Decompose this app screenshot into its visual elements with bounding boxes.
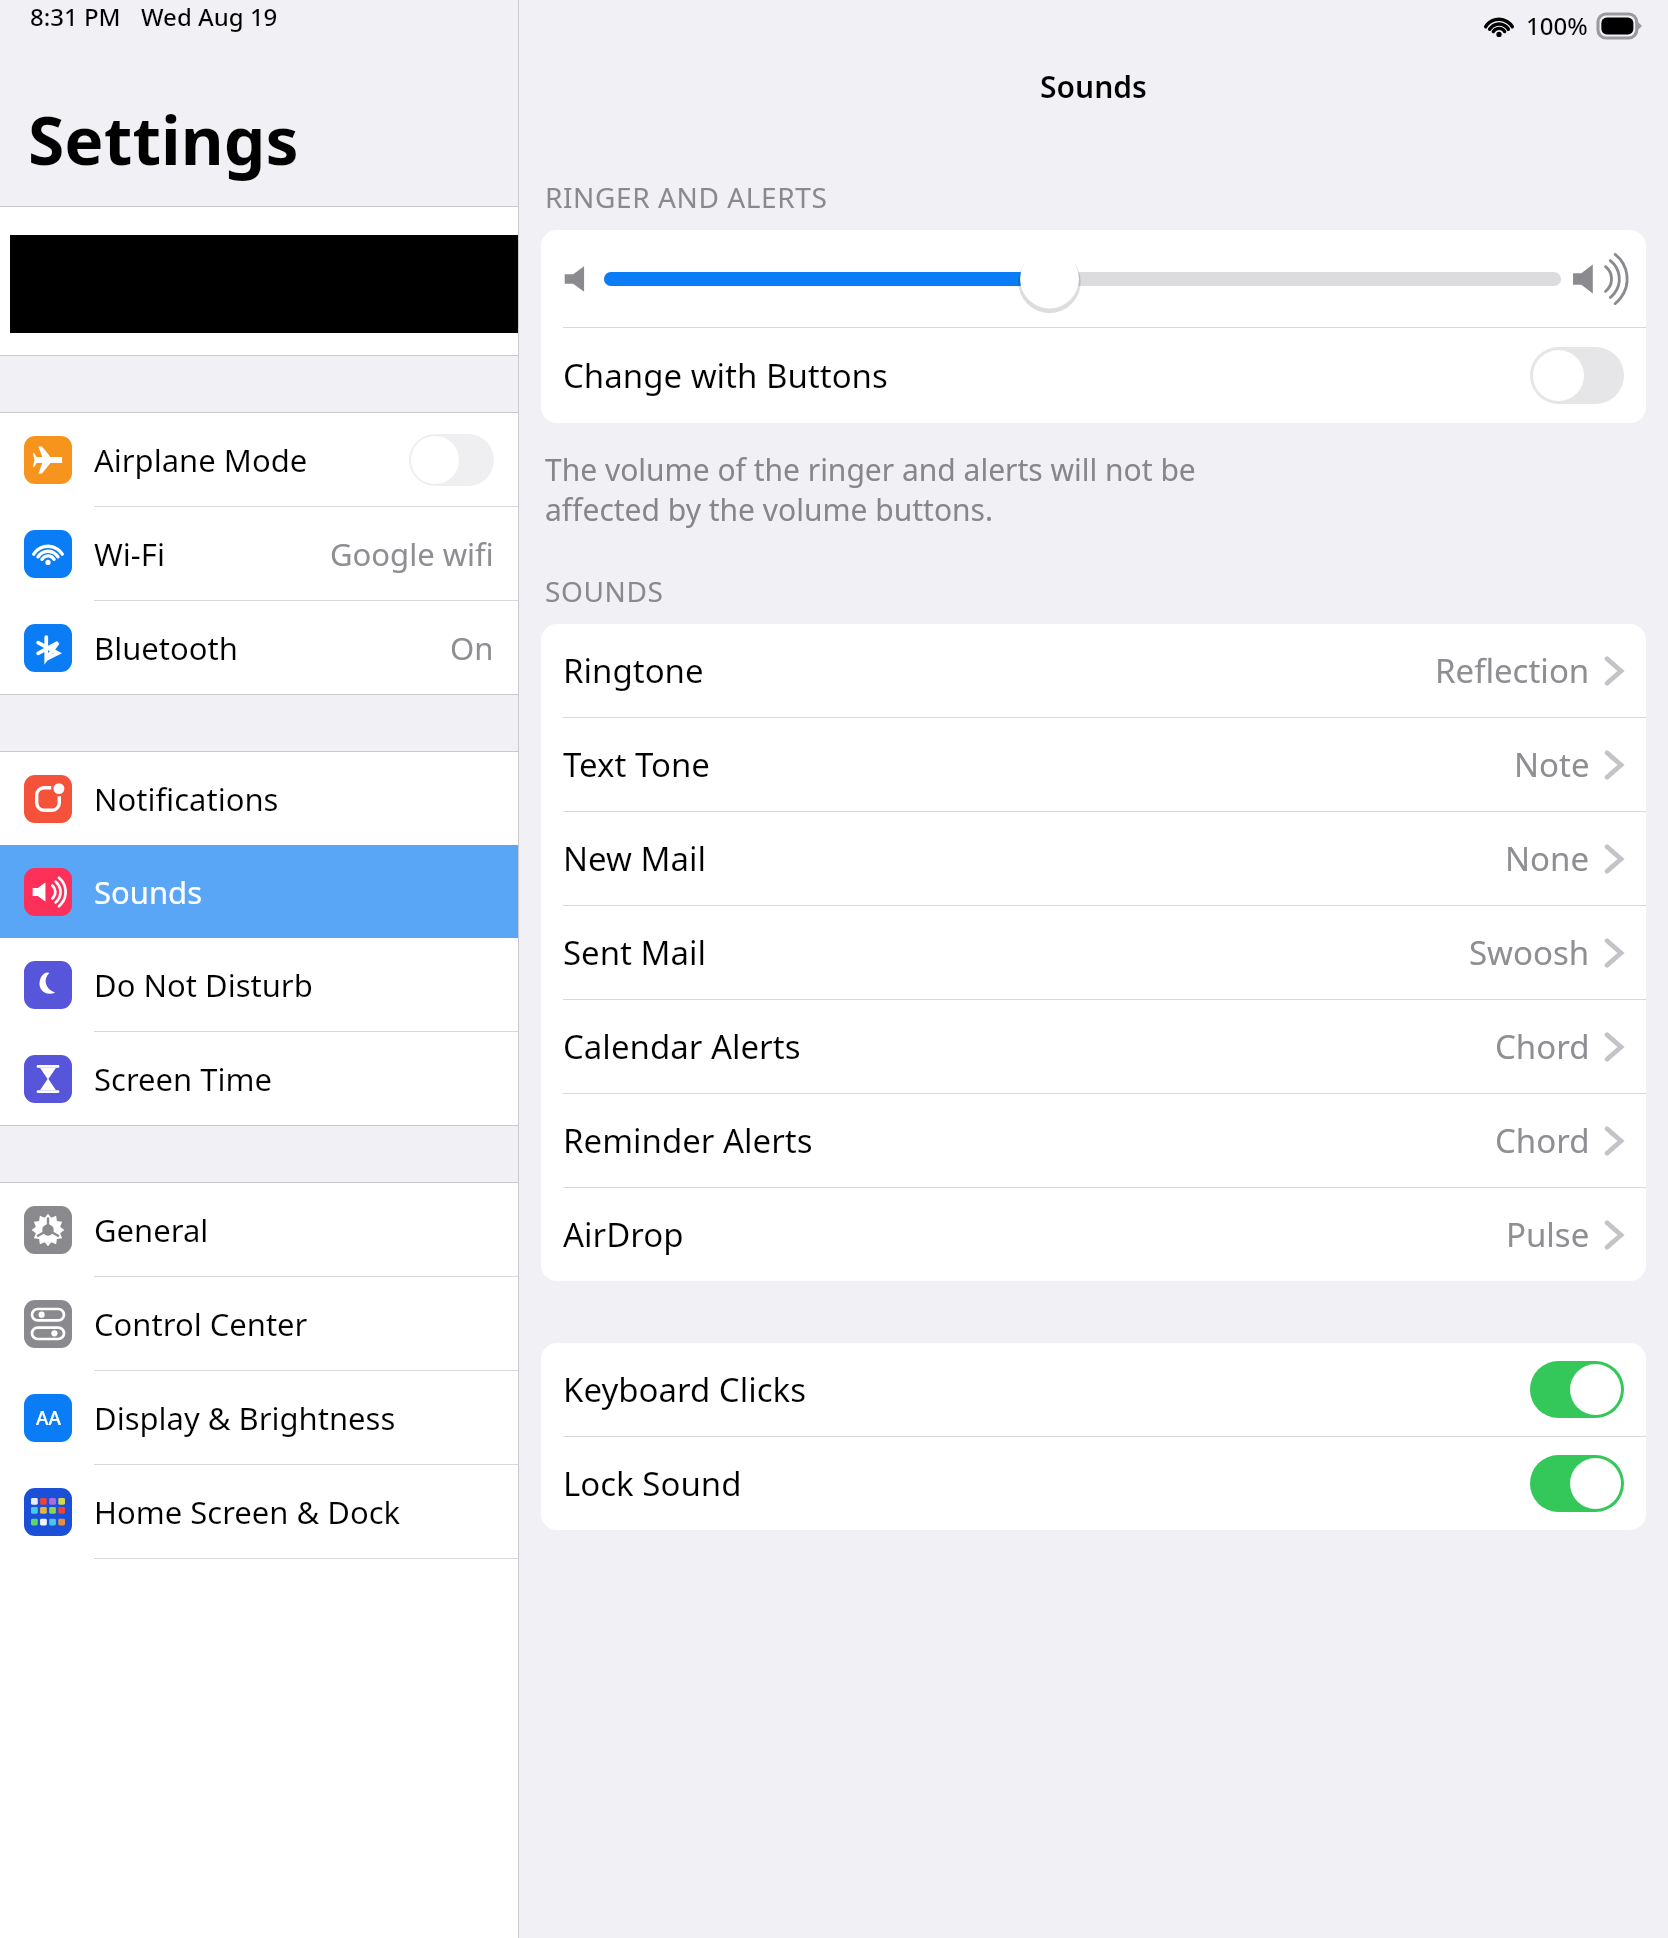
staticText: Bluetooth: [94, 627, 238, 669]
staticText: RINGER AND ALERTS: [545, 178, 828, 216]
button[interactable]: Screen Time: [0, 1032, 518, 1125]
staticText: On: [450, 627, 494, 669]
staticText: None: [1505, 836, 1590, 881]
staticText: Screen Time: [94, 1058, 272, 1100]
button[interactable]: New Mail: [541, 812, 1646, 905]
staticText: 8:31 PM: [30, 0, 121, 33]
button[interactable]: Sent Mail: [541, 906, 1646, 999]
button[interactable]: Airplane Mode: [0, 413, 518, 506]
staticText: Chord: [1495, 1118, 1590, 1163]
button[interactable]: Off: [1530, 347, 1624, 404]
staticText: Lock Sound: [563, 1461, 742, 1506]
staticText: The volume of the ringer and alerts will…: [545, 449, 1196, 530]
button[interactable]: Text Tone: [541, 718, 1646, 811]
staticText: Wed Aug 19: [141, 0, 278, 33]
staticText: Chord: [1495, 1024, 1590, 1069]
staticText: Sounds: [1040, 66, 1147, 107]
staticText: Home Screen & Dock: [94, 1491, 401, 1533]
staticText: Sent Mail: [563, 930, 707, 975]
staticText: Airplane Mode: [94, 439, 308, 481]
staticText: SOUNDS: [545, 572, 664, 610]
staticText: Change with Buttons: [563, 353, 888, 398]
staticText: Settings: [28, 94, 299, 184]
staticText: AA: [36, 1405, 61, 1431]
button[interactable]: Change with Buttons: [541, 328, 1646, 423]
button[interactable]: Lock Sound: [541, 1437, 1646, 1530]
button[interactable]: AA: [0, 1371, 518, 1464]
button[interactable]: AirDrop: [541, 1188, 1646, 1281]
button[interactable]: Calendar Alerts: [541, 1000, 1646, 1093]
button[interactable]: On: [1530, 1361, 1624, 1418]
staticText: Sounds: [94, 871, 203, 913]
staticText: Display & Brightness: [94, 1397, 396, 1439]
staticText: Wi-Fi: [94, 533, 165, 575]
button[interactable]: General: [0, 1183, 518, 1276]
button[interactable]: Home Screen & Dock: [0, 1465, 518, 1558]
button[interactable]: Bluetooth: [0, 601, 518, 694]
staticText: 100%: [1526, 9, 1588, 42]
staticText: Reminder Alerts: [563, 1118, 813, 1163]
button[interactable]: On: [1530, 1455, 1624, 1512]
staticText: Calendar Alerts: [563, 1024, 801, 1069]
button[interactable]: Off: [409, 434, 494, 486]
staticText: Pulse: [1506, 1212, 1590, 1257]
staticText: Text Tone: [563, 742, 710, 787]
staticText: Note: [1514, 742, 1590, 787]
staticText: New Mail: [563, 836, 707, 881]
button[interactable]: Ringtone: [541, 624, 1646, 717]
button[interactable]: Reminder Alerts: [541, 1094, 1646, 1187]
staticText: General: [94, 1209, 209, 1251]
staticText: Control Center: [94, 1303, 308, 1345]
staticText: Notifications: [94, 778, 279, 820]
staticText: Reflection: [1435, 648, 1590, 693]
button[interactable]: Wi-Fi: [0, 507, 518, 600]
button[interactable]: Control Center: [0, 1277, 518, 1370]
button[interactable]: Do Not Disturb: [0, 938, 518, 1031]
button[interactable]: Notifications: [0, 752, 518, 845]
staticText: AirDrop: [563, 1212, 684, 1257]
staticText: Ringtone: [563, 648, 704, 693]
staticText: Do Not Disturb: [94, 964, 313, 1006]
button[interactable]: Sounds: [0, 845, 518, 938]
staticText: Google wifi: [330, 533, 494, 575]
staticText: Keyboard Clicks: [563, 1367, 806, 1412]
other: Wi-Fi: [1484, 14, 1514, 38]
staticText: Swoosh: [1469, 930, 1590, 975]
button[interactable]: Keyboard Clicks: [541, 1343, 1646, 1436]
